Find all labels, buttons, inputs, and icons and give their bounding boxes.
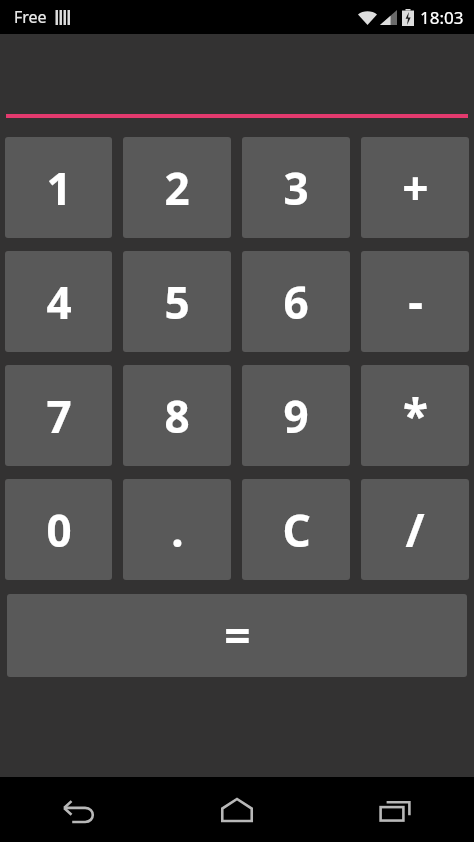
- button[interactable]: =: [7, 594, 467, 677]
- button[interactable]: .: [123, 479, 231, 580]
- button[interactable]: 7: [5, 365, 112, 466]
- staticText: 7: [46, 386, 72, 446]
- button[interactable]: 0: [5, 479, 112, 580]
- staticText: .: [171, 500, 184, 560]
- staticText: Free: [14, 6, 47, 28]
- staticText: 5: [164, 272, 190, 332]
- staticText: 6: [283, 272, 309, 332]
- button[interactable]: -: [361, 251, 469, 352]
- button[interactable]: Home: [158, 777, 316, 842]
- staticText: *: [403, 384, 428, 447]
- staticText: /: [405, 498, 425, 561]
- button[interactable]: Recent apps: [316, 777, 474, 842]
- button[interactable]: 9: [242, 365, 350, 466]
- button[interactable]: 8: [123, 365, 231, 466]
- staticText: =: [224, 604, 251, 667]
- staticText: -: [408, 270, 423, 333]
- staticText: 0: [46, 500, 72, 560]
- button[interactable]: 1: [5, 137, 112, 238]
- button[interactable]: 4: [5, 251, 112, 352]
- button[interactable]: 2: [123, 137, 231, 238]
- staticText: 3: [283, 158, 309, 218]
- button[interactable]: *: [361, 365, 469, 466]
- button[interactable]: /: [361, 479, 469, 580]
- staticText: 2: [164, 158, 190, 218]
- staticText: C: [282, 500, 311, 560]
- staticText: 4: [46, 272, 72, 332]
- staticText: 9: [283, 386, 309, 446]
- button[interactable]: 3: [242, 137, 350, 238]
- staticText: 8: [164, 386, 190, 446]
- button[interactable]: Back: [0, 777, 158, 842]
- button[interactable]: C: [242, 479, 350, 580]
- staticText: 18:03: [420, 6, 464, 29]
- button[interactable]: 5: [123, 251, 231, 352]
- staticText: 1: [46, 158, 72, 218]
- button[interactable]: 6: [242, 251, 350, 352]
- button[interactable]: +: [361, 137, 469, 238]
- staticText: +: [402, 156, 429, 219]
